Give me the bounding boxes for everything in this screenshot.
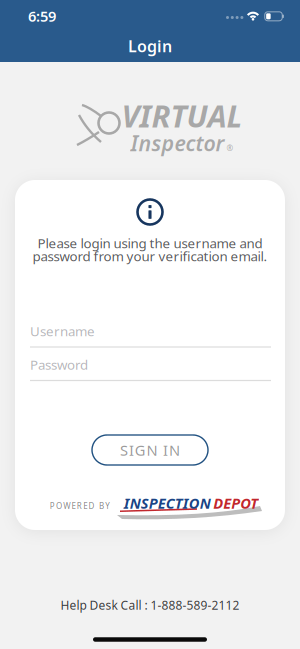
button[interactable]: Help Desk Call : 1-888-589-2112 — [60, 596, 239, 614]
staticText: VIRTUAL — [121, 95, 242, 136]
staticText: POWERED BY — [50, 501, 110, 511]
staticText: SIGN IN — [120, 440, 180, 460]
staticText: Help Desk Call : 1-888-589-2112 — [60, 597, 239, 613]
button[interactable]: Password — [15, 366, 285, 394]
staticText: Inspector ® — [130, 129, 233, 157]
staticText: Password — [30, 356, 88, 373]
staticText: 6:59 — [28, 6, 56, 26]
staticText: Login — [128, 35, 172, 57]
staticText: DEPOT — [213, 493, 258, 513]
button[interactable]: SIGN IN — [92, 435, 208, 465]
staticText: Username — [30, 322, 95, 340]
button[interactable]: Username — [15, 333, 285, 361]
staticText: password from your verification email. — [32, 247, 267, 265]
staticText: Please login using the username and — [37, 234, 262, 252]
staticText: INSPECTION — [124, 493, 211, 513]
